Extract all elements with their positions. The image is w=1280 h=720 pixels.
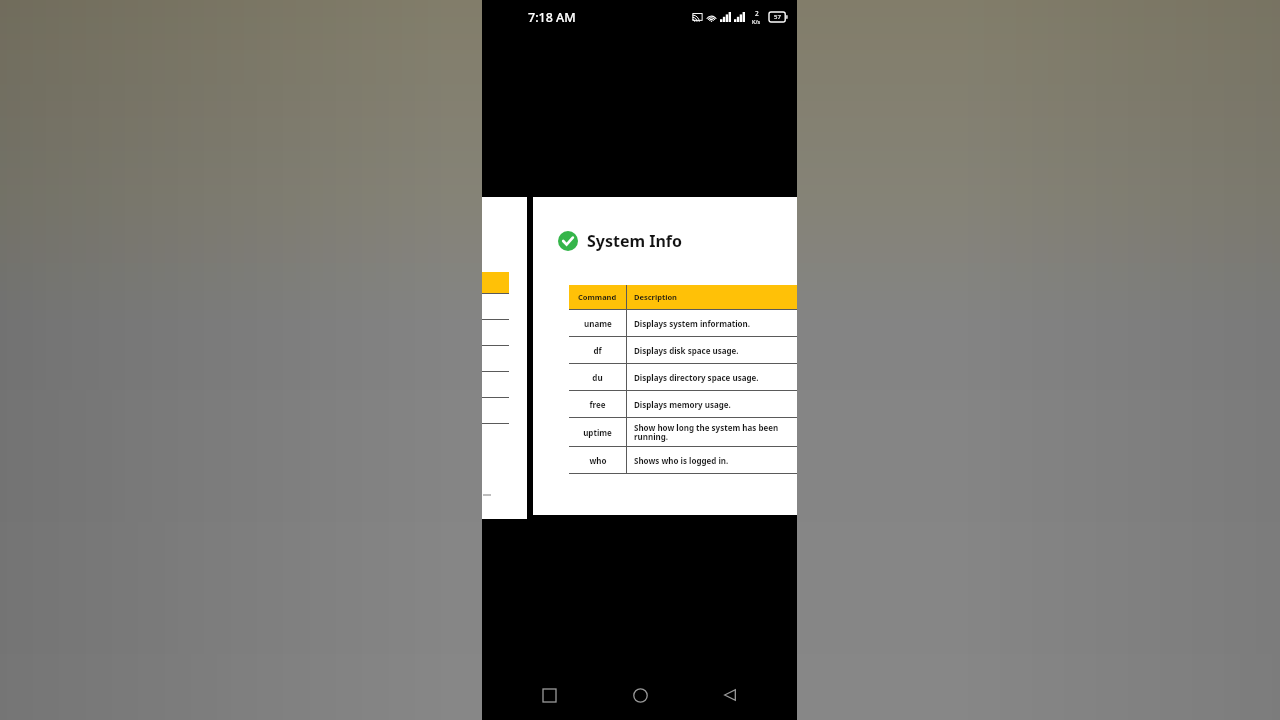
staticText: Description [634, 292, 677, 302]
staticText: Shows who is logged in. [634, 455, 729, 466]
staticText: free [589, 399, 606, 410]
button[interactable]: df [569, 337, 797, 363]
staticText: who [589, 455, 607, 466]
button[interactable]: free [569, 391, 797, 417]
staticText: du [592, 372, 603, 383]
staticText: uname [584, 318, 612, 329]
staticText: 57 [774, 13, 781, 21]
staticText: uptime [583, 427, 612, 438]
other: Completed [558, 231, 578, 251]
staticText: Displays directory space usage. [634, 372, 759, 383]
button[interactable]: uname [569, 310, 797, 336]
button[interactable]: Back [713, 678, 747, 712]
button[interactable]: du [569, 364, 797, 390]
staticText: Show how long the system has been runnin… [634, 422, 793, 443]
button[interactable]: who [569, 447, 797, 473]
button[interactable]: Recents [532, 678, 566, 712]
staticText: Displays disk space usage. [634, 345, 739, 356]
staticText: Command [578, 292, 617, 302]
staticText: Displays system information. [634, 318, 751, 329]
staticText: System Info [587, 230, 683, 252]
button[interactable]: uptime [569, 418, 797, 446]
staticText: df [593, 345, 602, 356]
staticText: K/s [752, 18, 761, 25]
staticText: Displays memory usage. [634, 399, 731, 410]
staticText: 7:18 AM [528, 9, 576, 26]
button[interactable]: Completed [533, 197, 797, 515]
button[interactable] [482, 197, 527, 519]
button[interactable]: Home [623, 678, 657, 712]
staticText: 2 [755, 9, 759, 18]
